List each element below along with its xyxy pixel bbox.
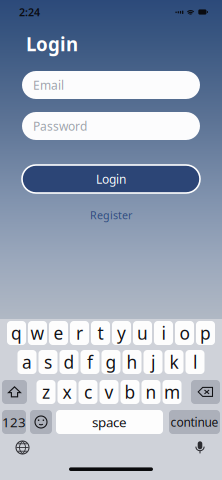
button[interactable]: s	[38, 350, 57, 374]
button[interactable]: c	[78, 380, 97, 404]
button[interactable]: g	[101, 350, 120, 374]
button[interactable]: f	[80, 350, 99, 374]
button[interactable]: p	[196, 321, 215, 345]
button[interactable]: Register	[90, 207, 132, 223]
button[interactable]: 123	[2, 410, 26, 434]
button[interactable]: Login	[22, 165, 200, 193]
button[interactable]: continue	[169, 410, 220, 434]
staticText: r	[76, 321, 83, 344]
staticText: n	[145, 380, 156, 403]
button[interactable]: x	[57, 380, 76, 404]
staticText: m	[164, 380, 180, 403]
button[interactable]: e	[49, 321, 68, 345]
staticText: space	[92, 413, 127, 431]
staticText: s	[44, 350, 52, 373]
button[interactable]: i	[154, 321, 173, 345]
staticText: z	[42, 380, 50, 403]
button[interactable]: n	[141, 380, 160, 404]
button[interactable]: space	[56, 410, 163, 434]
staticText: b	[124, 380, 135, 403]
button[interactable]: Email	[22, 71, 200, 99]
staticText: g	[105, 350, 116, 373]
staticText: Email	[33, 77, 64, 93]
button[interactable]: o	[175, 321, 194, 345]
staticText: 123	[2, 413, 26, 431]
staticText: x	[62, 380, 71, 403]
button[interactable]: y	[112, 321, 131, 345]
button[interactable]: d	[59, 350, 78, 374]
button[interactable]: Delete	[191, 380, 220, 404]
button[interactable]: u	[133, 321, 152, 345]
staticText: l	[193, 350, 197, 373]
button[interactable]: h	[122, 350, 141, 374]
button[interactable]: t	[91, 321, 110, 345]
button[interactable]: k	[164, 350, 183, 374]
staticText: e	[53, 321, 63, 344]
staticText: o	[179, 321, 189, 344]
staticText: w	[30, 321, 44, 344]
button[interactable]: Password	[22, 112, 200, 140]
button[interactable]: b	[120, 380, 139, 404]
staticText: t	[97, 321, 103, 344]
button[interactable]: w	[28, 321, 47, 345]
button[interactable]: z	[36, 380, 55, 404]
staticText: k	[169, 350, 178, 373]
button[interactable]: Dictate	[194, 441, 206, 454]
button[interactable]: a	[17, 350, 36, 374]
staticText: Login	[96, 171, 126, 187]
staticText: j	[151, 350, 155, 373]
staticText: 2:24	[19, 5, 40, 19]
button[interactable]: Emoji	[30, 410, 52, 434]
staticText: Login	[26, 32, 78, 56]
staticText: a	[22, 350, 32, 373]
button[interactable]: q	[7, 321, 26, 345]
staticText: c	[84, 380, 92, 403]
button[interactable]: Switch keyboard	[16, 441, 29, 454]
staticText: i	[161, 321, 165, 344]
staticText: u	[137, 321, 148, 344]
button[interactable]: r	[70, 321, 89, 345]
staticText: d	[63, 350, 74, 373]
staticText: continue	[170, 414, 218, 430]
button[interactable]: Shift	[2, 380, 27, 404]
staticText: y	[117, 321, 126, 344]
button[interactable]: v	[99, 380, 118, 404]
staticText: Password	[33, 118, 87, 134]
staticText: q	[11, 321, 22, 344]
button[interactable]: m	[162, 380, 181, 404]
staticText: f	[87, 350, 93, 373]
staticText: v	[104, 380, 113, 403]
staticText: h	[126, 350, 137, 373]
staticText: p	[200, 321, 211, 344]
button[interactable]: l	[185, 350, 204, 374]
button[interactable]: j	[143, 350, 162, 374]
staticText: Register	[90, 208, 132, 222]
